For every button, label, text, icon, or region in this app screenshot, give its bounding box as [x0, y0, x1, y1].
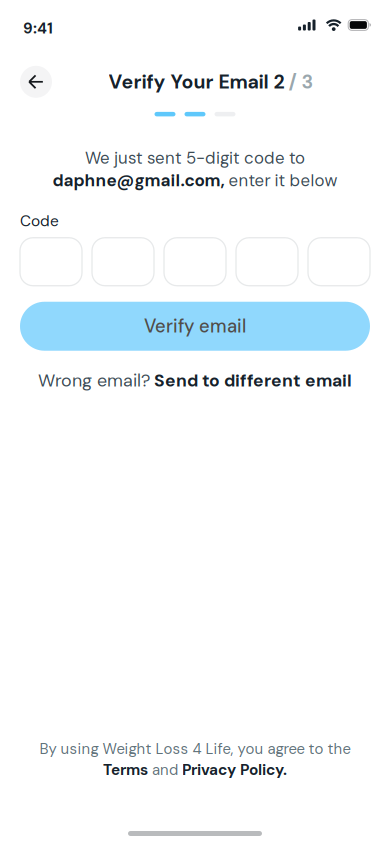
staticText: Verify email	[144, 314, 246, 338]
staticText: Verify Your Email 2	[108, 69, 284, 94]
staticText: Wrong email?	[38, 369, 150, 392]
staticText: Send to different email	[154, 369, 352, 392]
staticText: Privacy Policy.	[182, 760, 287, 780]
staticText: / 3	[284, 69, 313, 94]
button[interactable]: Privacy Policy.	[182, 760, 287, 780]
staticText: Code	[20, 211, 59, 231]
staticText: enter it below	[224, 169, 337, 191]
button[interactable]: Terms	[103, 760, 148, 780]
staticText: We just sent 5-digit code to	[85, 147, 305, 169]
button[interactable]: Send to different email	[154, 369, 352, 392]
staticText: By using Weight Loss 4 Life, you agree t…	[39, 739, 350, 759]
staticText: 9:41	[23, 18, 53, 38]
button[interactable]: Verify email	[20, 302, 370, 351]
staticText: and	[148, 760, 182, 779]
staticText: daphne@gmail.com,	[52, 169, 224, 192]
button[interactable]: Back	[20, 66, 52, 98]
staticText: Terms	[103, 760, 148, 780]
